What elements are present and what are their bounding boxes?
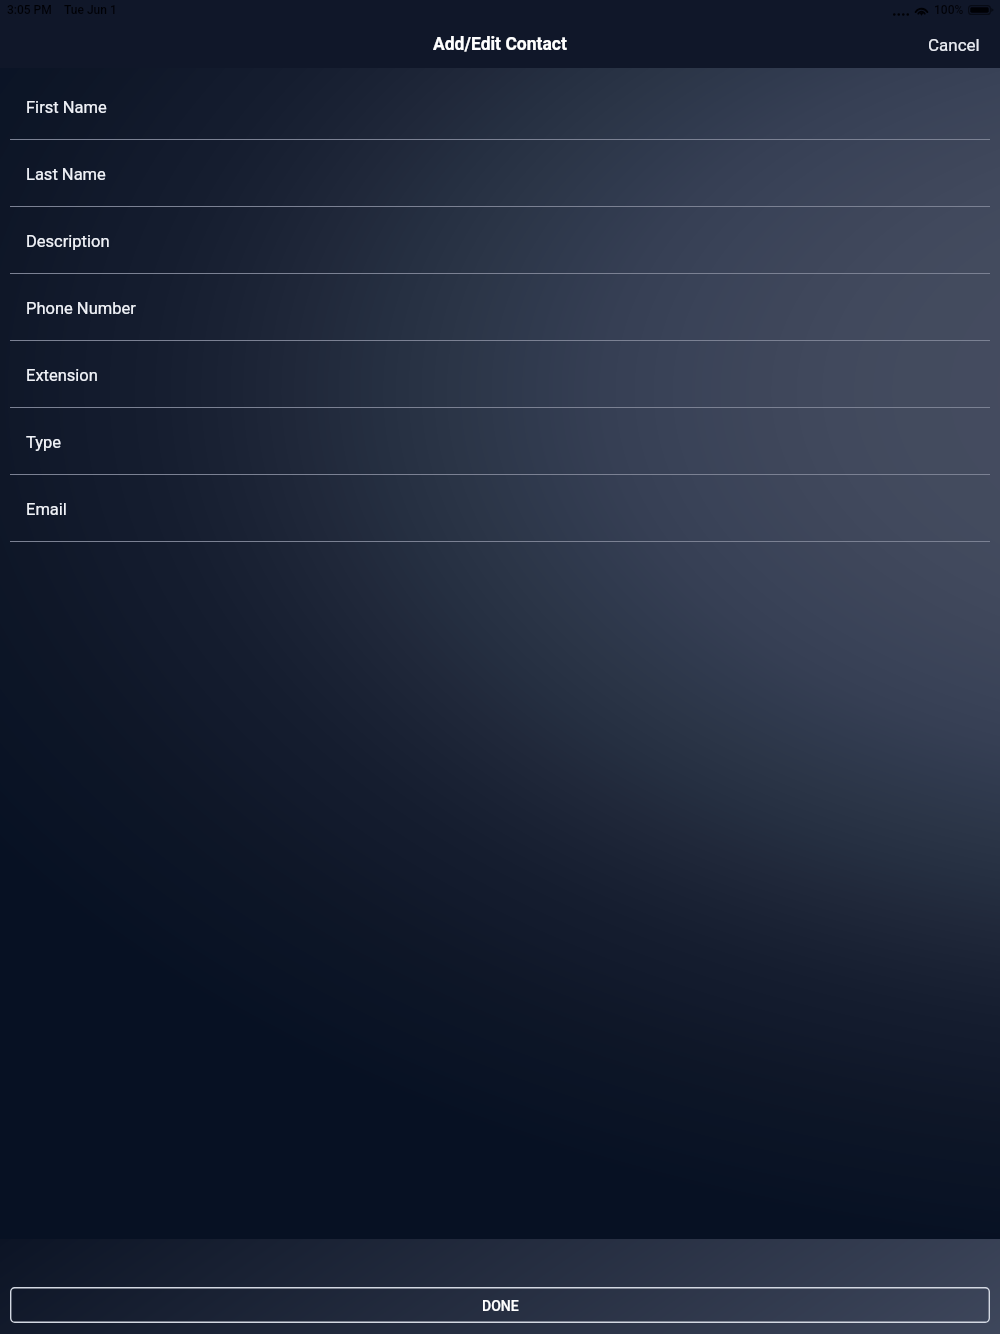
staticText: Type: [26, 433, 62, 452]
staticText: Email: [26, 500, 67, 519]
staticText: Extension: [26, 366, 98, 385]
button[interactable]: DONE: [10, 1287, 990, 1323]
staticText: Add/Edit Contact: [433, 34, 567, 55]
button[interactable]: Description: [0, 207, 1000, 274]
staticText: Description: [26, 232, 110, 251]
staticText: Tue Jun 1: [64, 3, 117, 17]
staticText: Last Name: [26, 165, 106, 184]
button[interactable]: First Name: [0, 68, 1000, 140]
button[interactable]: Email: [0, 475, 1000, 542]
staticText: Cancel: [928, 35, 980, 55]
button[interactable]: Cancel: [908, 24, 1000, 64]
staticText: Phone Number: [26, 299, 136, 318]
staticText: First Name: [26, 98, 107, 117]
other: Wi-Fi: [914, 2, 929, 18]
button[interactable]: Type: [0, 408, 1000, 475]
staticText: 100%: [934, 3, 964, 17]
button[interactable]: Last Name: [0, 140, 1000, 207]
other: Cellular signal: [893, 2, 909, 18]
button[interactable]: Extension: [0, 341, 1000, 408]
button[interactable]: Phone Number: [0, 274, 1000, 341]
staticText: DONE: [482, 1298, 519, 1314]
other: Battery full: [968, 5, 994, 15]
staticText: 3:05 PM: [7, 3, 52, 17]
